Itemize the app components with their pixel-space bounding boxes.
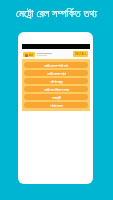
button[interactable]: Ad app xyxy=(23,52,35,57)
staticText: স্টেশন সমূহ xyxy=(50,79,63,84)
button[interactable]: মেট্রো রেল সম্পর্কে তথ্য xyxy=(24,62,88,68)
button[interactable]: সময়সূচী xyxy=(24,94,88,100)
button[interactable]: মেট্রো রেলের ভাড়া xyxy=(24,70,88,76)
staticText: মেট্রো রেল সম্পর্কিত তথ্য xyxy=(0,5,113,20)
button[interactable]: শেয়ার করুন xyxy=(24,102,88,108)
staticText: INSTALL xyxy=(75,52,87,56)
staticText: Ad xyxy=(29,53,33,57)
button[interactable]: মেট্রো রেল নিয়ম ও সময় xyxy=(24,86,88,92)
staticText: মেট্রো রেল নিয়ম ও সময় xyxy=(44,87,69,92)
staticText: মেট্রো রেল সম্পর্কে তথ্য xyxy=(44,63,68,68)
button[interactable]: স্টেশন সমূহ xyxy=(24,78,88,84)
staticText: সময়সূচী xyxy=(52,96,61,99)
staticText: শেয়ার করুন xyxy=(50,103,63,108)
staticText: মেট্রো রেলের ভাড়া xyxy=(47,71,66,76)
button[interactable]: Install xyxy=(73,51,88,57)
